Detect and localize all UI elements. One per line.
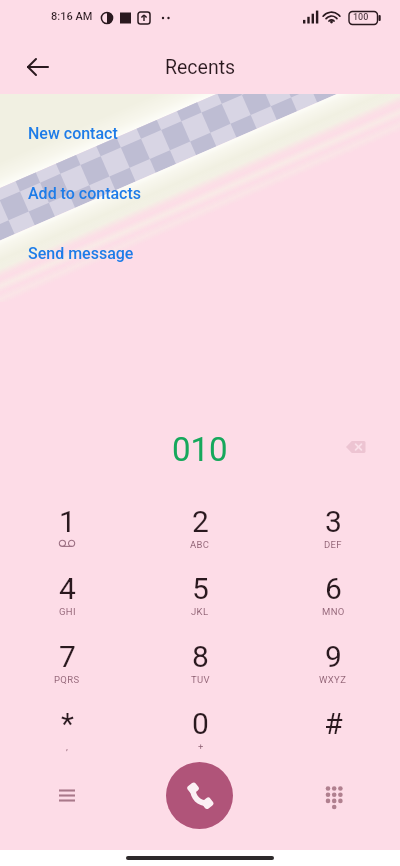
staticText: 3 (325, 504, 342, 539)
staticText: GHI (59, 606, 76, 617)
button[interactable]: 5 (150, 571, 250, 633)
staticText: DEF (324, 539, 342, 550)
staticText: Recents (165, 56, 236, 79)
button[interactable]: 2 (150, 504, 250, 566)
staticText: PQRS (54, 674, 80, 685)
staticText: 4 (59, 571, 76, 606)
button[interactable]: 9 (283, 639, 383, 701)
staticText: 9 (325, 639, 342, 674)
staticText: + (198, 741, 204, 752)
staticText: WXYZ (319, 674, 347, 685)
button[interactable]: New contact (0, 103, 400, 163)
button[interactable]: 4 (17, 571, 117, 633)
button[interactable]: Send message (0, 223, 400, 283)
staticText: 0 (192, 706, 209, 741)
staticText: 1 (59, 504, 76, 539)
button[interactable]: Add to contacts (0, 163, 400, 223)
button[interactable]: * (17, 706, 117, 768)
staticText: JKL (191, 606, 209, 617)
button[interactable]: 3 (283, 504, 383, 566)
staticText: , (66, 741, 69, 752)
staticText: 2 (192, 504, 209, 539)
staticText: Add to contacts (28, 184, 142, 203)
button[interactable]: Call log (45, 773, 89, 817)
staticText: MNO (322, 606, 345, 617)
button[interactable]: Call (166, 762, 233, 829)
button[interactable]: # (283, 706, 383, 768)
button[interactable]: 1 (17, 504, 117, 566)
button[interactable]: 0 (150, 706, 250, 768)
button[interactable]: Backspace (338, 429, 374, 465)
button[interactable]: Dialpad (312, 773, 356, 817)
staticText: New contact (28, 124, 118, 143)
button[interactable]: 6 (283, 571, 383, 633)
button[interactable]: 7 (17, 639, 117, 701)
staticText: Send message (28, 244, 134, 263)
staticText: 6 (325, 571, 342, 606)
button[interactable]: 8 (150, 639, 250, 701)
staticText: 5 (192, 571, 209, 606)
staticText: * (61, 706, 74, 741)
staticText: 010 (172, 430, 228, 469)
staticText: 8:16 AM (51, 10, 93, 23)
button[interactable]: Back (18, 47, 58, 87)
staticText: 8 (192, 639, 209, 674)
staticText: 100 (353, 12, 369, 23)
staticText: TUV (191, 674, 210, 685)
staticText: ABC (190, 539, 210, 550)
staticText: 7 (59, 639, 76, 674)
staticText: # (324, 706, 343, 741)
